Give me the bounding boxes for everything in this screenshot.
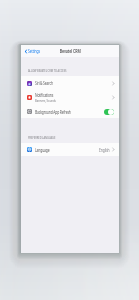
- staticText: Banners, Sounds: [35, 98, 56, 103]
- staticText: Language: [35, 147, 50, 153]
- staticText: Background App Refresh: [35, 109, 71, 115]
- button[interactable]: Background App Refresh: [21, 105, 119, 118]
- button[interactable]: Settings: [24, 48, 45, 54]
- staticText: ALLOW BEVATEL CRM TO ACCESS: [28, 68, 67, 73]
- other: Open: [112, 81, 115, 86]
- staticText: Bevatel CRM: [60, 48, 81, 55]
- staticText: Siri & Search: [35, 80, 53, 86]
- button[interactable]: Notifications: [21, 90, 119, 105]
- staticText: Notifications: [35, 92, 53, 98]
- staticText: PREFERRED LANGUAGE: [28, 135, 55, 140]
- staticText: English: [99, 147, 110, 153]
- button[interactable]: Background App Refresh toggle: [104, 109, 114, 115]
- button[interactable]: Siri & Search: [21, 76, 119, 90]
- button[interactable]: Language: [21, 143, 119, 156]
- staticText: Settings: [28, 48, 40, 54]
- other: Open: [112, 147, 115, 152]
- other: Open: [112, 95, 115, 100]
